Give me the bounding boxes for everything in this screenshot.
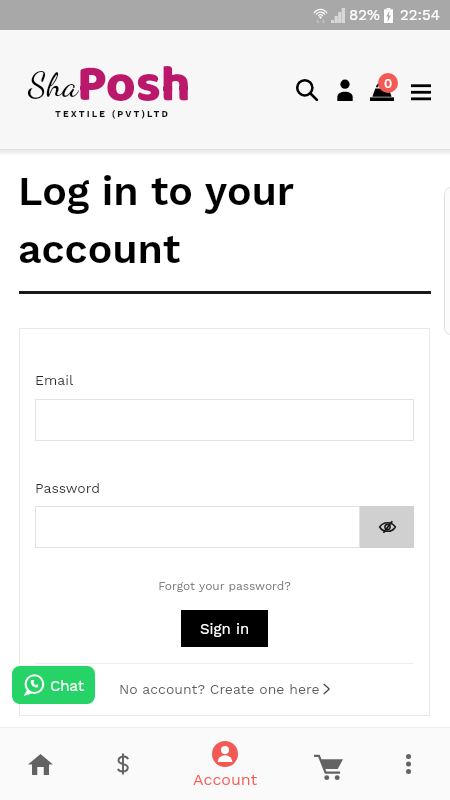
staticText: Email <box>35 372 74 388</box>
button[interactable]: Prices <box>90 728 180 800</box>
button[interactable]: Menu <box>401 72 441 112</box>
button[interactable]: My account <box>320 72 360 112</box>
staticText: Sha <box>28 65 78 106</box>
button[interactable]: Chat <box>12 666 95 704</box>
button[interactable]: Search <box>280 72 320 112</box>
button[interactable] <box>35 506 360 548</box>
staticText: No account? Create one here <box>119 681 320 697</box>
staticText: 0 <box>384 76 393 91</box>
button[interactable] <box>35 399 414 441</box>
button[interactable]: No account? Create one here <box>35 681 414 697</box>
staticText: 22:54 <box>400 6 440 24</box>
button[interactable]: Account <box>180 728 270 800</box>
button[interactable]: Sign in <box>181 610 268 647</box>
staticText: Password <box>35 480 100 496</box>
staticText: Log in to your account <box>18 167 340 273</box>
button[interactable]: Show password <box>360 506 414 548</box>
staticText: Chat <box>50 677 85 695</box>
button[interactable]: Shopping cart <box>360 72 400 112</box>
button[interactable]: Home <box>0 728 90 800</box>
staticText: Sign in <box>200 620 250 638</box>
button[interactable]: Side panel <box>444 187 450 335</box>
staticText: Posh <box>77 45 191 127</box>
staticText: TEXTILE (PVT)LTD <box>55 109 170 120</box>
staticText: 82% <box>349 6 380 24</box>
button[interactable]: More <box>360 728 450 800</box>
button[interactable]: Forgot your password? <box>35 579 414 593</box>
button[interactable]: Cart <box>270 728 360 800</box>
staticText: Account <box>193 770 258 789</box>
